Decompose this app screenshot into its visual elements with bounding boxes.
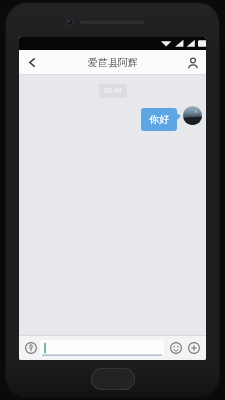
button[interactable]: 你好 [141,108,177,131]
staticText: 爱苣县阿辉 [88,56,138,69]
button[interactable]: Avatar [183,106,202,125]
button[interactable]: Home [91,368,135,390]
button[interactable]: Voice message [22,339,40,357]
staticText: 你好 [149,113,169,126]
button[interactable] [40,340,164,356]
button[interactable]: More options [185,339,203,357]
button[interactable]: Back [19,50,45,75]
button[interactable]: Contact profile [180,50,206,75]
staticText: 00:44 [104,86,122,96]
button[interactable]: Emoji [167,339,185,357]
